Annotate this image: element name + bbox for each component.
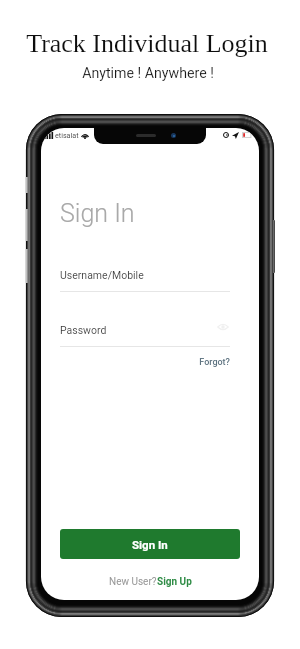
staticText: Forgot?	[199, 357, 230, 368]
button[interactable]: Show password	[217, 321, 229, 333]
staticText: Sign Up	[157, 576, 192, 588]
button[interactable]: Sign Up	[157, 576, 192, 588]
button[interactable]: Sign In	[60, 529, 240, 559]
button[interactable]: Forgot?	[199, 357, 230, 368]
staticText: Sign In	[132, 538, 168, 551]
staticText: Password	[60, 324, 107, 336]
staticText: Anytime ! Anywhere !	[82, 65, 214, 82]
staticText: New User?	[109, 576, 157, 588]
staticText: Track Individual Login	[26, 29, 268, 58]
staticText: Sign In	[60, 199, 135, 228]
staticText: Username/Mobile	[60, 269, 144, 281]
staticText: etisalat	[55, 131, 79, 139]
